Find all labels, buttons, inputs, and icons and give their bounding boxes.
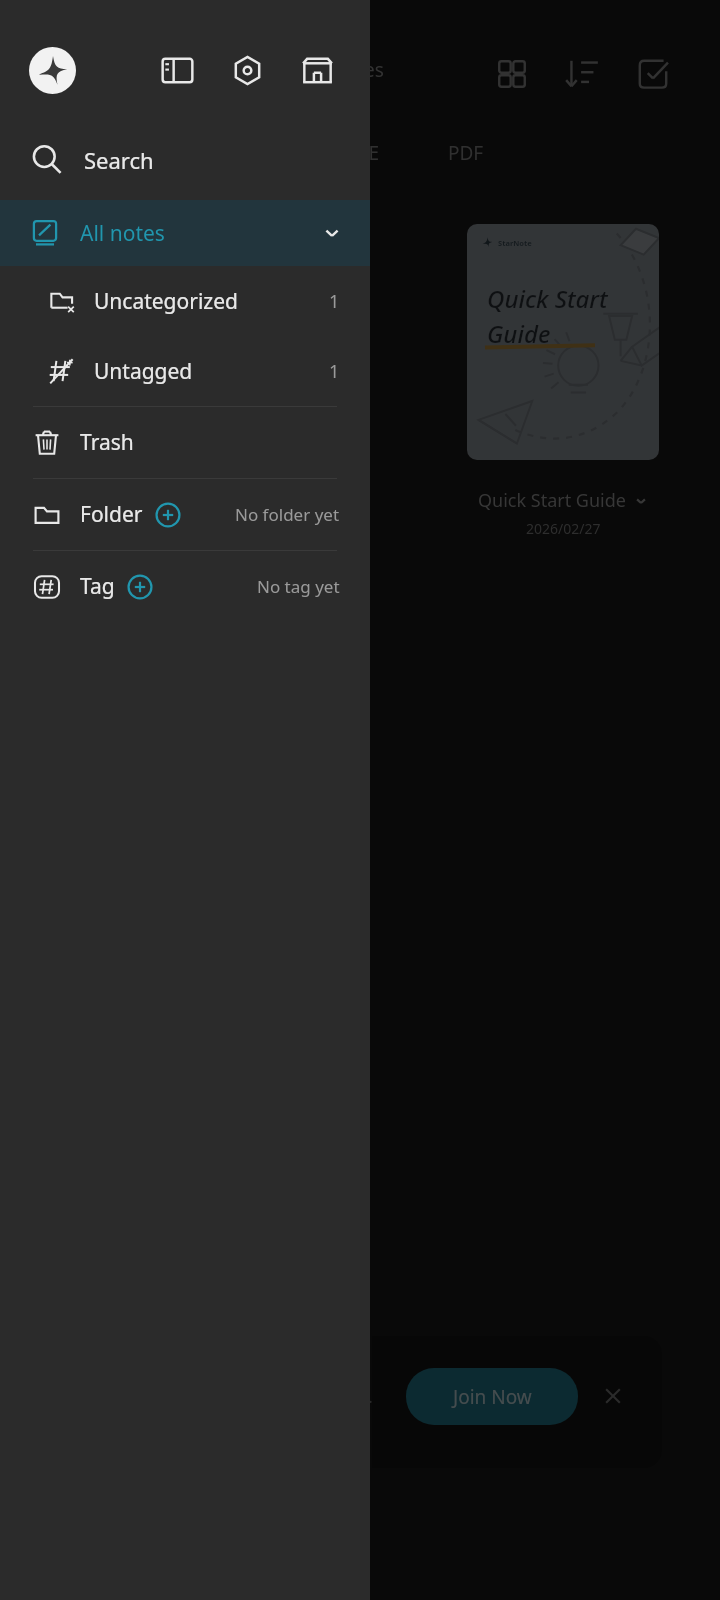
button[interactable]: Uncategorized (0, 266, 370, 336)
staticText: No folder yet (235, 503, 340, 526)
button[interactable]: Join Now (406, 1368, 578, 1425)
button[interactable]: Untagged (0, 336, 370, 406)
button[interactable]: Toggle sidebar (155, 48, 200, 93)
staticText: All notes (80, 219, 165, 248)
button[interactable]: StarNote (467, 224, 659, 460)
button[interactable]: StarNote (29, 47, 76, 94)
button[interactable]: All notes (0, 200, 370, 266)
button[interactable]: Sort (560, 52, 604, 96)
button[interactable]: Store (295, 48, 340, 93)
staticText: 1 (329, 289, 340, 314)
staticText: Untagged (94, 357, 193, 386)
button[interactable]: Grid view (490, 52, 534, 96)
button[interactable]: Tag (0, 551, 370, 622)
staticText: PDF (448, 140, 484, 166)
button[interactable]: Close (594, 1377, 632, 1415)
button[interactable]: Select (631, 52, 675, 96)
staticText: ... (360, 1386, 373, 1408)
staticText: StarNote (498, 238, 532, 248)
staticText: Quick Start Guide (478, 488, 626, 513)
staticText: No tag yet (257, 575, 340, 598)
staticText: 1 (329, 359, 340, 384)
button[interactable]: Add Folder (155, 502, 181, 528)
staticText: Guide (487, 317, 551, 350)
staticText: Search (84, 145, 154, 175)
staticText: TE (358, 140, 380, 166)
staticText: Uncategorized (94, 287, 238, 316)
staticText: 2026/02/27 (526, 519, 601, 538)
staticText: Trash (80, 428, 134, 457)
staticText: es (364, 57, 384, 83)
staticText: Join Now (453, 1384, 532, 1410)
staticText: Folder (80, 500, 143, 529)
staticText: Tag (80, 572, 115, 601)
button[interactable]: Trash (0, 407, 370, 478)
button[interactable]: Folder (0, 479, 370, 550)
button[interactable]: Search (0, 120, 370, 200)
button[interactable]: Settings (225, 48, 270, 93)
staticText: Quick Start (487, 282, 608, 315)
button[interactable]: Add Tag (127, 574, 153, 600)
